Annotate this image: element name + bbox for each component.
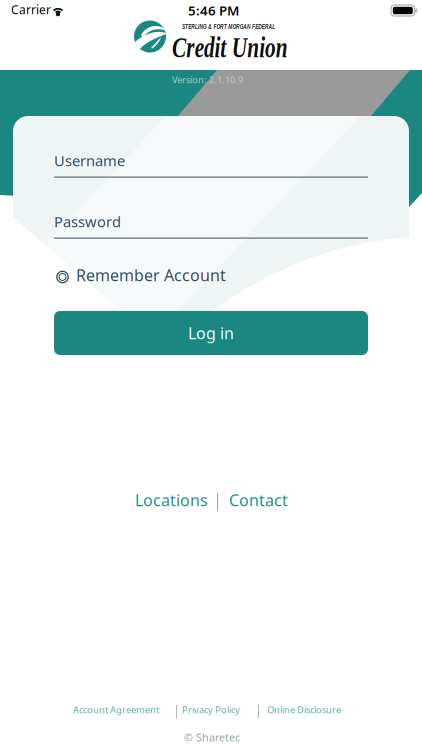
button[interactable]: Privacy Policy <box>0 0 422 750</box>
button[interactable]: Locations <box>0 0 422 750</box>
staticText: Locations <box>135 489 208 511</box>
button[interactable]: Log in <box>54 311 368 355</box>
staticText: Carrier <box>11 2 51 17</box>
button[interactable]: Account Agreement <box>0 0 422 750</box>
staticText: Username <box>54 151 125 170</box>
staticText: STERLING & FORT MORGAN FEDERAL <box>182 22 363 32</box>
button[interactable]: Remember Account <box>56 270 246 284</box>
staticText: Privacy Policy <box>182 703 240 716</box>
staticText: Online Disclosure <box>267 703 341 716</box>
staticText: Log in <box>188 322 234 344</box>
staticText: Credit Union <box>172 30 335 64</box>
staticText: Version: 2.1.10.9 <box>172 73 243 86</box>
staticText: Account Agreement <box>73 703 159 716</box>
staticText: © Sharetec <box>184 730 240 744</box>
button[interactable]: Contact <box>0 0 422 750</box>
staticText: Remember Account <box>76 264 226 286</box>
staticText: Password <box>54 212 121 231</box>
staticText: Contact <box>229 489 288 511</box>
button[interactable]: Online Disclosure <box>0 0 422 750</box>
staticText: 5:46 PM <box>188 1 239 19</box>
